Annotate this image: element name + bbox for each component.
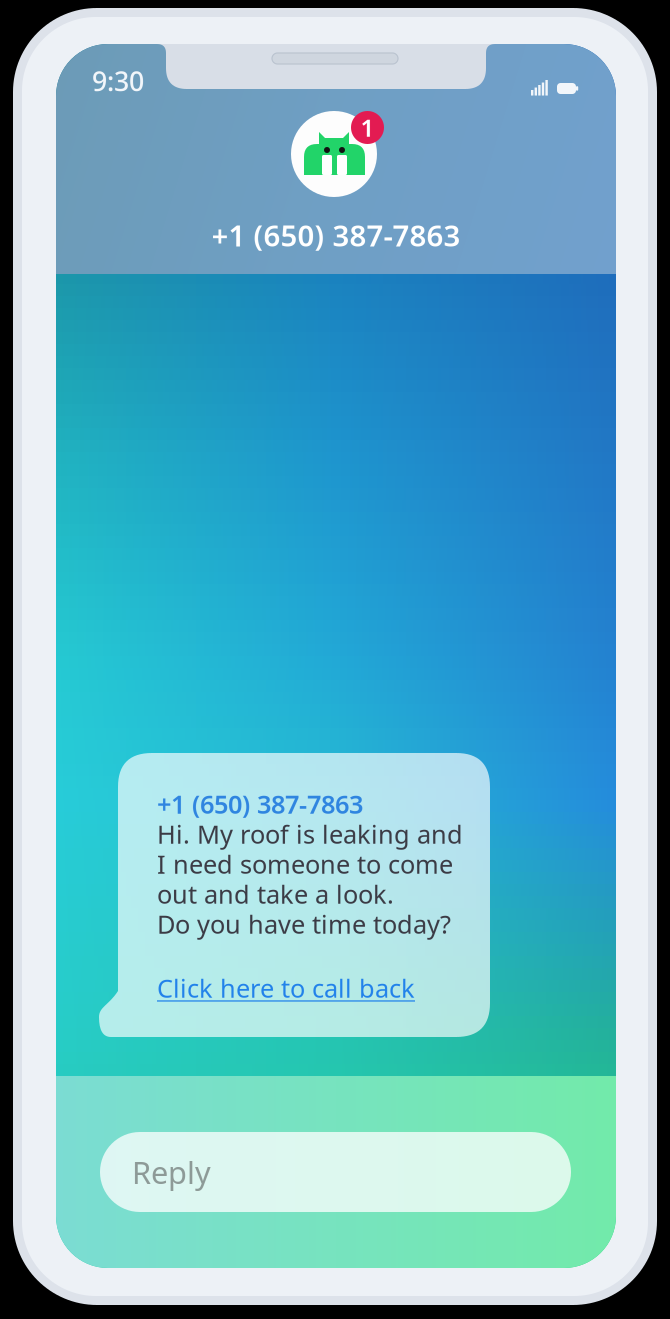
- staticText: Hi. My roof is leaking and: [157, 817, 463, 851]
- staticText: 1: [360, 112, 374, 143]
- button[interactable]: Reply: [100, 1132, 571, 1212]
- staticText: I need someone to come: [157, 847, 453, 881]
- staticText: +1 (650) 387-7863: [211, 215, 460, 254]
- button[interactable]: Click here to call back: [157, 973, 467, 1003]
- button[interactable]: 1 unread message: [351, 111, 384, 144]
- staticText: 9:30: [92, 63, 144, 99]
- staticText: Reply: [132, 1152, 211, 1192]
- staticText: Click here to call back: [157, 971, 415, 1005]
- staticText: +1 (650) 387-7863: [157, 787, 363, 821]
- staticText: out and take a look.: [157, 877, 394, 911]
- staticText: Do you have time today?: [157, 907, 451, 941]
